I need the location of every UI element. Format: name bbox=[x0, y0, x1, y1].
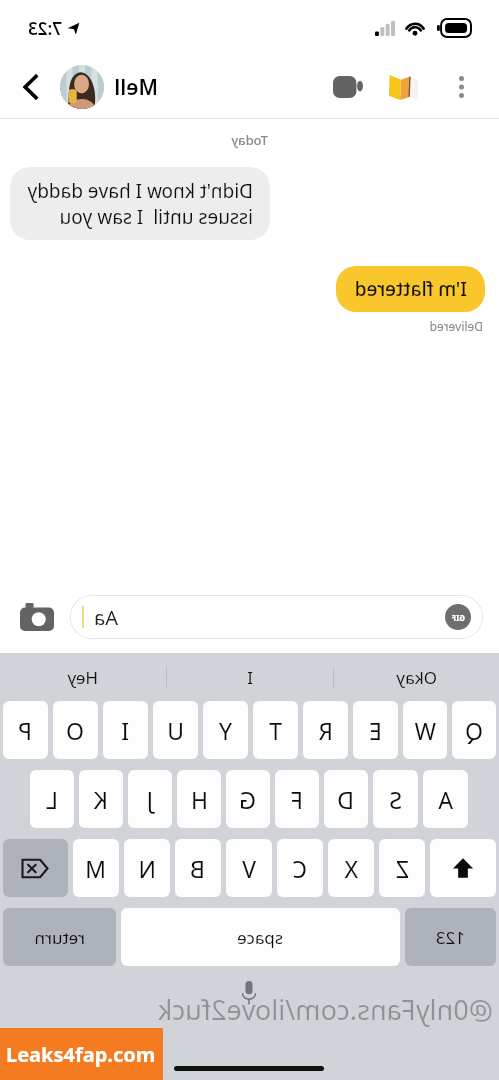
staticText: M bbox=[85, 853, 106, 884]
staticText: F bbox=[291, 784, 303, 815]
button[interactable]: GIF bbox=[445, 604, 471, 630]
button[interactable]: H bbox=[177, 770, 221, 828]
staticText: Leaks4fap.com bbox=[6, 1041, 156, 1068]
button[interactable]: Hey bbox=[0, 653, 166, 701]
staticText: Didn't know I have daddy issues until I … bbox=[27, 178, 253, 229]
button[interactable]: GIF bbox=[70, 595, 483, 639]
button[interactable]: Y bbox=[203, 701, 248, 759]
staticText: D bbox=[337, 784, 354, 815]
button[interactable]: Back bbox=[14, 70, 48, 104]
button[interactable]: Camera bbox=[16, 596, 58, 638]
button[interactable]: R bbox=[303, 701, 348, 759]
button[interactable]: I bbox=[167, 653, 333, 701]
staticText: G bbox=[239, 784, 256, 815]
button[interactable]: Video call bbox=[331, 70, 365, 104]
staticText: Delivered bbox=[429, 318, 483, 334]
staticText: O bbox=[66, 715, 84, 746]
staticText: space bbox=[237, 926, 283, 949]
button[interactable]: Aa bbox=[90, 604, 122, 631]
button[interactable]: P bbox=[3, 701, 48, 759]
button[interactable] bbox=[60, 65, 104, 109]
staticText: Y bbox=[218, 715, 232, 746]
staticText: N bbox=[138, 853, 156, 884]
staticText: T bbox=[269, 715, 282, 746]
staticText: Aa bbox=[94, 604, 118, 631]
staticText: U bbox=[167, 715, 184, 746]
staticText: E bbox=[369, 715, 382, 746]
button[interactable]: A bbox=[423, 770, 468, 828]
button[interactable]: F bbox=[275, 770, 319, 828]
staticText: S bbox=[389, 784, 402, 815]
staticText: Q bbox=[465, 715, 483, 746]
staticText: Z bbox=[395, 853, 409, 884]
staticText: I bbox=[121, 715, 129, 746]
button[interactable]: N bbox=[124, 839, 170, 897]
button[interactable]: 123 bbox=[405, 908, 496, 966]
staticText: 123 bbox=[435, 926, 465, 949]
staticText: Hey bbox=[67, 666, 98, 689]
staticText: return bbox=[34, 926, 85, 949]
staticText: V bbox=[242, 853, 256, 884]
staticText: 7:23 bbox=[28, 17, 62, 40]
button[interactable]: C bbox=[277, 839, 323, 897]
button[interactable]: G bbox=[226, 770, 270, 828]
button[interactable]: Mell bbox=[60, 65, 158, 109]
button[interactable]: Q bbox=[452, 701, 496, 759]
button[interactable]: S bbox=[373, 770, 418, 828]
staticText: R bbox=[318, 715, 333, 746]
button[interactable]: O bbox=[53, 701, 98, 759]
button[interactable]: Okay bbox=[334, 653, 499, 701]
staticText: @0nlyFans.com/ilove2fuck bbox=[157, 991, 493, 1028]
staticText: K bbox=[93, 784, 108, 815]
button[interactable]: return bbox=[3, 908, 116, 966]
button[interactable]: Stickers bbox=[387, 70, 421, 104]
button[interactable]: Backspace bbox=[3, 839, 68, 897]
staticText: C bbox=[292, 853, 307, 884]
staticText: H bbox=[190, 784, 208, 815]
button[interactable]: V bbox=[226, 839, 272, 897]
button[interactable]: E bbox=[353, 701, 398, 759]
staticText: I bbox=[247, 666, 253, 689]
button[interactable]: D bbox=[324, 770, 368, 828]
button[interactable]: Z bbox=[379, 839, 425, 897]
staticText: B bbox=[190, 853, 205, 884]
staticText: Mell bbox=[114, 73, 158, 102]
button[interactable]: M bbox=[73, 839, 119, 897]
button[interactable]: J bbox=[128, 770, 172, 828]
button[interactable]: K bbox=[79, 770, 123, 828]
staticText: A bbox=[438, 784, 453, 815]
button[interactable]: W bbox=[403, 701, 447, 759]
staticText: L bbox=[45, 784, 58, 815]
staticText: X bbox=[344, 853, 358, 884]
button[interactable]: U bbox=[153, 701, 198, 759]
button[interactable]: space bbox=[121, 908, 400, 966]
button[interactable]: I bbox=[103, 701, 148, 759]
button[interactable]: Dictation bbox=[234, 978, 264, 1008]
button[interactable]: L bbox=[30, 770, 74, 828]
button[interactable]: Shift bbox=[430, 839, 496, 897]
staticText: GIF bbox=[451, 612, 465, 623]
staticText: J bbox=[146, 784, 153, 815]
staticText: P bbox=[18, 715, 32, 746]
button[interactable]: I'm flattered bbox=[336, 266, 485, 312]
staticText: Okay bbox=[396, 666, 437, 689]
staticText: Today bbox=[231, 131, 268, 149]
staticText: W bbox=[414, 715, 436, 746]
staticText: I'm flattered bbox=[354, 276, 467, 302]
button[interactable]: Didn't know I have daddy issues until I … bbox=[10, 167, 270, 240]
button[interactable]: X bbox=[328, 839, 374, 897]
button[interactable]: More options bbox=[447, 72, 477, 102]
button[interactable]: B bbox=[175, 839, 221, 897]
button[interactable]: T bbox=[253, 701, 298, 759]
